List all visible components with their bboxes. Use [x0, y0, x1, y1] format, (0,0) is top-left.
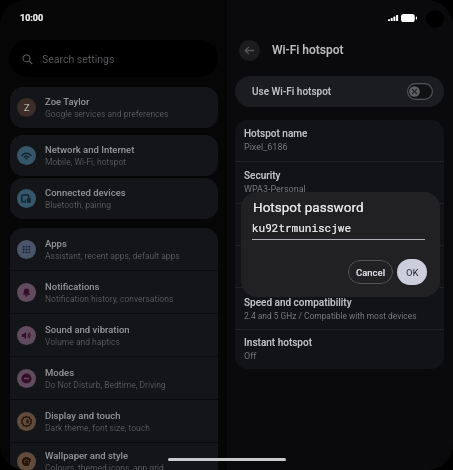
staticText: ku92trmuniscjwe [252, 220, 352, 235]
staticText: Assistant, recent apps, default apps [45, 251, 180, 261]
button[interactable]: Security [235, 162, 444, 203]
staticText: Hotspot password [244, 212, 326, 224]
button[interactable]: Back [239, 40, 260, 61]
staticText: Security [244, 170, 281, 182]
staticText: Pixel_6186 [244, 142, 288, 153]
staticText: 2.4 and 5 GHz / Compatible with most dev… [244, 311, 417, 321]
staticText: •••••••• [244, 226, 269, 237]
button[interactable]: Connected devices [10, 178, 218, 219]
button[interactable]: Search settings [9, 40, 218, 77]
staticText: Apps [45, 238, 67, 249]
button[interactable]: Z [10, 87, 218, 128]
staticText: Colours, themed icons, app grid [45, 463, 164, 470]
staticText: Hotspot name [244, 128, 308, 140]
staticText: Modes [45, 367, 75, 378]
button[interactable]: OK [397, 259, 427, 285]
staticText: Hotspot password [253, 199, 364, 215]
button[interactable]: Instant hotspot [235, 330, 444, 369]
staticText: Notifications [45, 281, 100, 292]
button[interactable]: Wallpaper and style [10, 443, 218, 470]
other: Use Wi-Fi hotspot [407, 83, 433, 100]
button[interactable]: Apps [10, 228, 218, 270]
staticText: Mobile, Wi-Fi, hotspot [45, 157, 127, 167]
staticText: Dark theme, font size, touch [45, 423, 150, 433]
staticText: Bluetooth, pairing [45, 200, 112, 210]
button[interactable]: Sound and vibration [10, 314, 218, 356]
button[interactable]: Hotspot name [235, 120, 444, 161]
staticText: Display and touch [45, 410, 121, 421]
staticText: Instant hotspot [244, 337, 312, 349]
button[interactable]: Notifications [10, 271, 218, 313]
staticText: Use Wi-Fi hotspot [252, 86, 332, 98]
button[interactable]: Cancel [348, 260, 393, 284]
staticText: Notification history, conversations [45, 294, 174, 304]
staticText: Network and Internet [45, 144, 135, 155]
staticText: Cancel [356, 267, 386, 278]
staticText: Wallpaper and style [45, 450, 129, 461]
staticText: Google services and preferences [45, 109, 169, 119]
staticText: Search settings [42, 53, 115, 65]
staticText: 10:00 [20, 13, 44, 24]
staticText: Off [244, 351, 257, 362]
staticText: Z [24, 102, 30, 113]
button[interactable]: Network and Internet [10, 135, 218, 176]
staticText: WPA3-Personal [244, 184, 306, 195]
staticText: OK [406, 267, 419, 278]
button[interactable]: Use Wi-Fi hotspot [235, 76, 444, 107]
staticText: Do Not Disturb, Bedtime, Driving [45, 380, 166, 390]
staticText: Speed and compatibility [244, 297, 352, 309]
staticText: Volume and haptics [45, 337, 120, 347]
button[interactable]: Speed and compatibility [235, 288, 444, 329]
button[interactable]: AP Band [235, 246, 444, 287]
staticText: Wi-Fi hotspot [272, 43, 344, 57]
staticText: Connected devices [45, 187, 126, 198]
staticText: Sound and vibration [45, 324, 130, 335]
button[interactable]: Modes [10, 357, 218, 399]
button[interactable]: Hotspot password [235, 204, 444, 245]
staticText: Zoe Taylor [45, 96, 90, 107]
button[interactable]: Display and touch [10, 400, 218, 442]
